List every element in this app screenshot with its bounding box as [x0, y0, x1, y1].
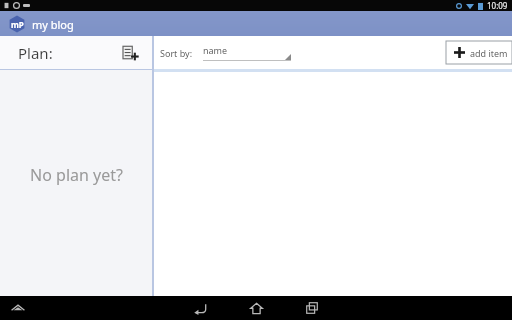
staticText: mP	[11, 19, 24, 30]
staticText: my blog	[32, 17, 74, 32]
staticText: No plan yet?	[30, 164, 123, 186]
button[interactable]: add item	[446, 41, 512, 64]
button[interactable]: Back	[189, 297, 211, 319]
staticText: 10:09	[487, 0, 508, 11]
staticText: add item	[470, 47, 508, 59]
button[interactable]: Hide navigation	[8, 298, 28, 318]
staticText: name	[203, 44, 228, 56]
button[interactable]: mP	[6, 15, 76, 33]
button[interactable]: Recent apps	[301, 297, 323, 319]
staticText: Sort by:	[160, 47, 193, 59]
button[interactable]: Add plan	[118, 40, 144, 66]
button[interactable]: name	[203, 41, 291, 65]
button[interactable]: Home	[245, 297, 267, 319]
staticText: Plan:	[18, 43, 53, 63]
